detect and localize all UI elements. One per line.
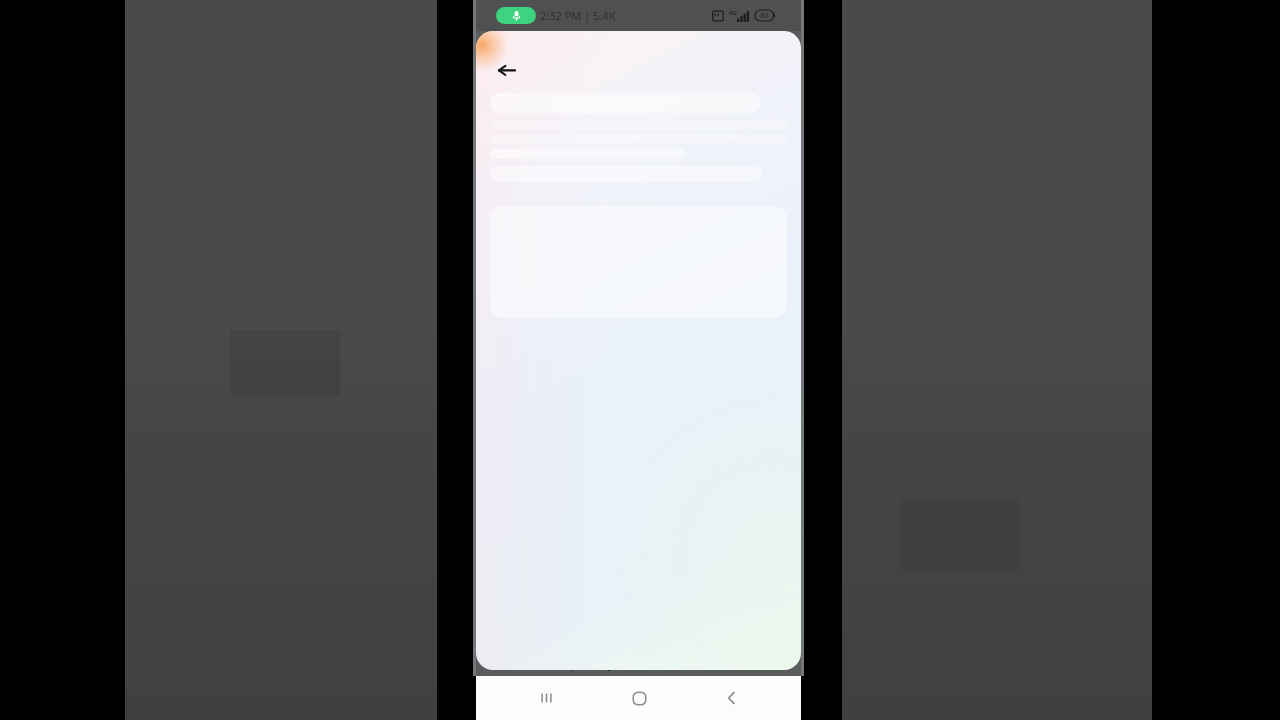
- button[interactable]: Recent apps: [523, 676, 569, 720]
- staticText: Public: [740, 655, 775, 671]
- staticText: 4G: [729, 9, 737, 17]
- button[interactable]: Home: [616, 676, 662, 720]
- button[interactable]: Back: [488, 51, 526, 89]
- staticText: 2:32 PM | 5.4K: [540, 8, 616, 23]
- button[interactable]: Account privacy: [476, 650, 801, 676]
- button[interactable]: Back: [708, 676, 754, 720]
- staticText: Account privacy: [518, 654, 615, 672]
- other: Microphone recording: [496, 7, 536, 24]
- staticText: 60: [760, 11, 769, 21]
